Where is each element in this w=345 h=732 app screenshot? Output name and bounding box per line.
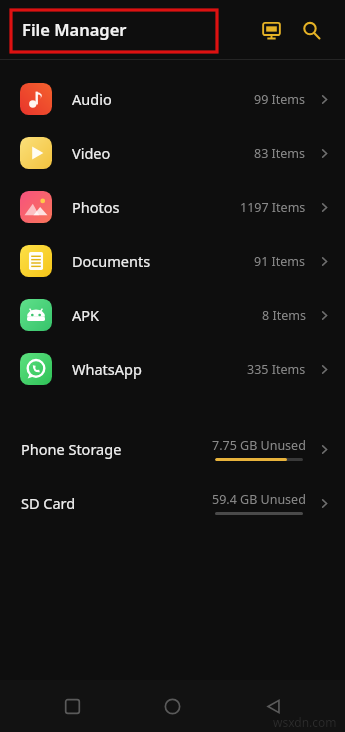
staticText: Video [72,143,111,163]
staticText: APK [72,305,100,325]
staticText: 59.4 GB Unused [212,491,306,508]
staticText: Photos [72,197,120,217]
staticText: WhatsApp [72,359,142,379]
button[interactable]: APK [0,288,345,342]
staticText: 7.75 GB Unused [212,437,306,454]
staticText: 91 Items [254,253,306,270]
staticText: 99 Items [254,91,306,108]
button[interactable]: Photos [0,180,345,234]
button[interactable]: Documents [0,234,345,288]
button[interactable]: Audio [0,72,345,126]
staticText: Audio [72,89,112,109]
staticText: 83 Items [254,145,306,162]
button[interactable]: SD Card [0,476,345,530]
button[interactable]: Video [0,126,345,180]
staticText: 8 Items [262,307,306,324]
button[interactable]: Cast to screen [251,10,291,50]
button[interactable]: Search [291,10,331,50]
staticText: 1197 Items [240,199,306,216]
staticText: wsxdn.com [273,714,337,730]
staticText: File Manager [22,18,127,40]
button[interactable]: Phone Storage [0,422,345,476]
button[interactable]: Recents [50,684,94,728]
button[interactable]: Back [251,684,295,728]
staticText: SD Card [21,493,76,513]
staticText: Phone Storage [21,439,122,459]
button[interactable]: WhatsApp [0,342,345,396]
staticText: 335 Items [247,361,306,378]
button[interactable]: Home [150,684,194,728]
staticText: Documents [72,251,151,271]
